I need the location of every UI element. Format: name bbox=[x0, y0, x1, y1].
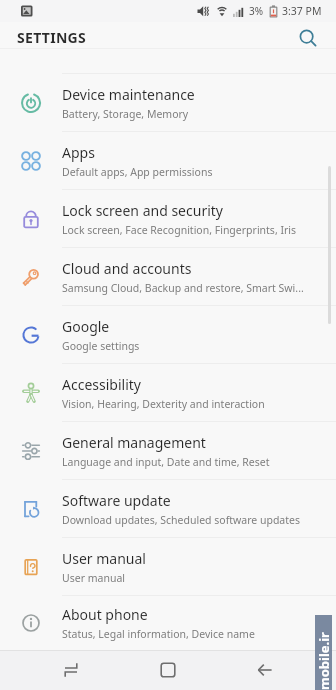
staticText: Google settings bbox=[62, 339, 140, 353]
staticText: 3:37 PM bbox=[282, 4, 322, 18]
button[interactable]: Google bbox=[0, 306, 336, 363]
staticText: mobile.ir bbox=[315, 615, 332, 690]
staticText: General management bbox=[62, 433, 206, 452]
staticText: Battery, Storage, Memory bbox=[62, 107, 189, 121]
staticText: User manual bbox=[62, 571, 125, 585]
staticText: Device maintenance bbox=[62, 85, 195, 104]
staticText: Download updates, Scheduled software upd… bbox=[62, 513, 300, 527]
button[interactable]: User manual bbox=[0, 538, 336, 595]
staticText: Default apps, App permissions bbox=[62, 165, 213, 179]
button[interactable]: Apps bbox=[0, 132, 336, 189]
button[interactable]: Software update bbox=[0, 480, 336, 537]
button[interactable]: General management bbox=[0, 422, 336, 479]
button[interactable]: Cloud and accounts bbox=[0, 248, 336, 305]
button[interactable] bbox=[297, 27, 319, 48]
staticText: Lock screen and security bbox=[62, 201, 223, 220]
staticText: Accessibility bbox=[62, 375, 141, 394]
staticText: 3% bbox=[249, 4, 264, 18]
button[interactable] bbox=[53, 653, 87, 687]
staticText: Lock screen, Face Recognition, Fingerpri… bbox=[62, 223, 297, 237]
staticText: Status, Legal information, Device name bbox=[62, 627, 255, 641]
staticText: Google bbox=[62, 317, 110, 336]
staticText: Cloud and accounts bbox=[62, 259, 192, 278]
staticText: Apps bbox=[62, 143, 95, 162]
staticText: Language and input, Date and time, Reset bbox=[62, 455, 270, 469]
staticText: Samsung Cloud, Backup and restore, Smart… bbox=[62, 281, 304, 295]
button[interactable] bbox=[248, 653, 282, 687]
staticText: SETTINGS bbox=[17, 28, 87, 47]
button[interactable]: Lock screen and security bbox=[0, 190, 336, 247]
button[interactable] bbox=[151, 653, 185, 687]
button[interactable]: Accessibility bbox=[0, 364, 336, 421]
staticText: Software update bbox=[62, 491, 171, 510]
staticText: User manual bbox=[62, 549, 146, 568]
staticText: About phone bbox=[62, 605, 148, 624]
staticText: Vision, Hearing, Dexterity and interacti… bbox=[62, 397, 265, 411]
button[interactable]: About phone bbox=[0, 596, 336, 650]
button[interactable]: Device maintenance bbox=[0, 74, 336, 131]
